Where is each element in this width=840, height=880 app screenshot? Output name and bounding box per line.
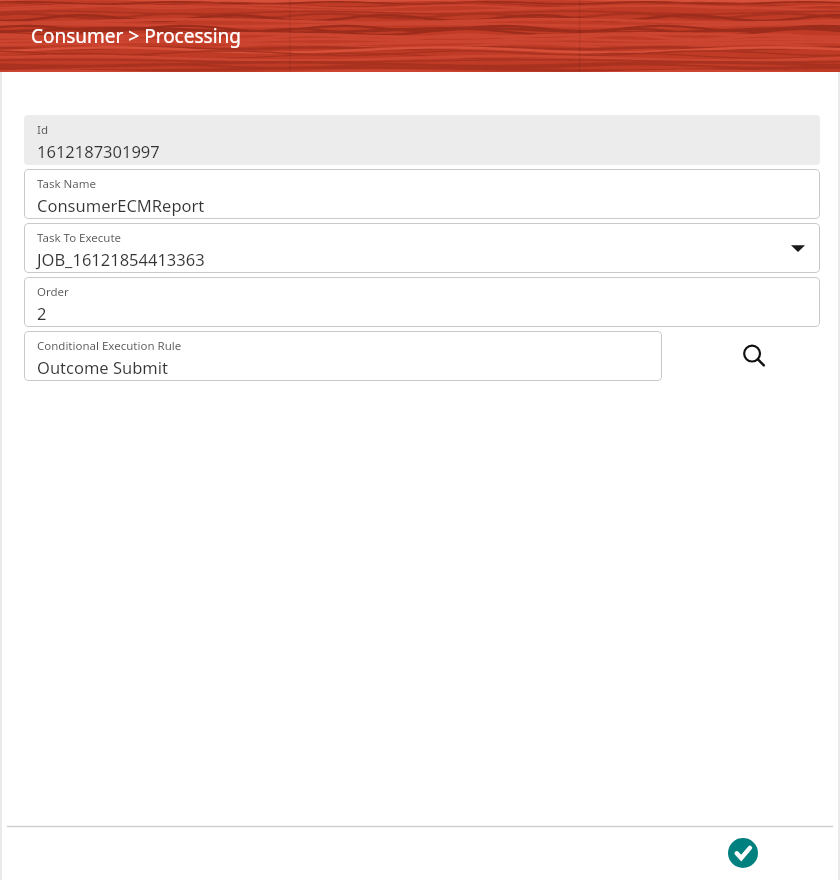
button[interactable]: Search bbox=[734, 336, 774, 376]
staticText: 2 bbox=[37, 302, 47, 324]
staticText: Outcome Submit bbox=[37, 356, 169, 378]
button[interactable]: Id bbox=[24, 115, 820, 165]
staticText: Conditional Execution Rule bbox=[37, 338, 182, 354]
staticText: Id bbox=[37, 122, 48, 138]
staticText: Task Name bbox=[37, 176, 96, 192]
staticText: 1612187301997 bbox=[37, 140, 160, 162]
button[interactable]: Task Name bbox=[24, 169, 820, 219]
button[interactable]: Conditional Execution Rule bbox=[24, 331, 662, 381]
staticText: Order bbox=[37, 284, 69, 300]
button[interactable]: Order bbox=[24, 277, 820, 327]
staticText: ConsumerECMReport bbox=[37, 194, 205, 216]
button[interactable]: Task To Execute bbox=[24, 223, 820, 273]
staticText: Consumer > Processing bbox=[31, 23, 241, 49]
button[interactable]: Confirm bbox=[726, 836, 760, 870]
staticText: JOB_16121854413363 bbox=[37, 248, 205, 270]
staticText: Task To Execute bbox=[37, 230, 122, 246]
